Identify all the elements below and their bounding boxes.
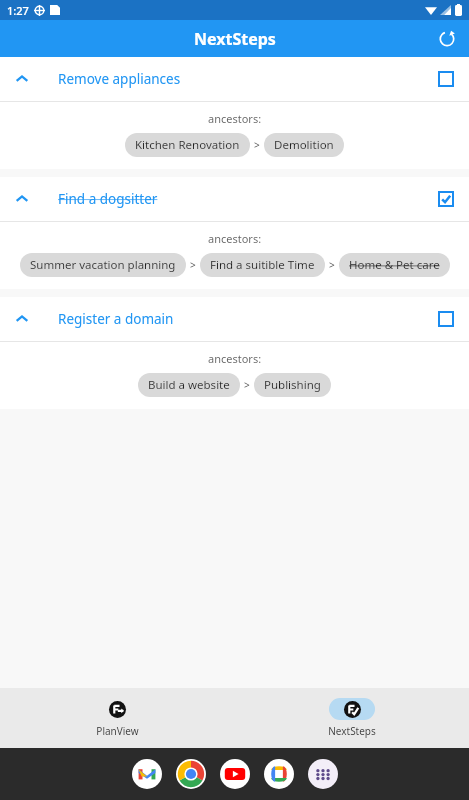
button[interactable]: Checked xyxy=(423,177,469,221)
button[interactable]: NextSteps xyxy=(234,688,469,748)
staticText: ancestors: xyxy=(208,351,262,366)
staticText: NextSteps xyxy=(328,724,376,738)
staticText: > xyxy=(329,258,335,272)
button[interactable]: Summer vacation planning xyxy=(20,253,186,277)
button[interactable]: Publishing xyxy=(254,373,331,397)
button[interactable]: App xyxy=(308,759,338,789)
button[interactable]: App xyxy=(132,759,162,789)
button[interactable]: Collapse xyxy=(0,297,469,341)
button[interactable]: Find a suitible Time xyxy=(200,253,325,277)
button[interactable]: Build a website xyxy=(138,373,240,397)
button[interactable]: PlanView xyxy=(0,688,234,748)
staticText: > xyxy=(244,378,250,392)
staticText: Home & Pet care xyxy=(349,257,440,273)
staticText: Demolition xyxy=(274,137,334,153)
staticText: Remove appliances xyxy=(58,70,423,88)
staticText: Summer vacation planning xyxy=(30,257,176,273)
button[interactable]: Collapse xyxy=(0,177,469,221)
button[interactable]: Refresh xyxy=(431,23,463,55)
button[interactable]: App xyxy=(176,759,206,789)
staticText: > xyxy=(190,258,196,272)
staticText: NextSteps xyxy=(194,28,276,50)
button[interactable]: Collapse xyxy=(0,177,44,221)
button[interactable]: Unchecked xyxy=(423,57,469,101)
staticText: 1:27 xyxy=(7,3,29,18)
button[interactable]: Home & Pet care xyxy=(339,253,450,277)
staticText: Find a suitible Time xyxy=(210,257,315,273)
staticText: Kitchen Renovation xyxy=(135,137,240,153)
staticText: PlanView xyxy=(96,724,139,738)
button[interactable]: App xyxy=(264,759,294,789)
staticText: Publishing xyxy=(264,377,321,393)
button[interactable]: Kitchen Renovation xyxy=(125,133,250,157)
button[interactable]: Unchecked xyxy=(423,297,469,341)
button[interactable]: App xyxy=(220,759,250,789)
staticText: Build a website xyxy=(148,377,230,393)
staticText: ancestors: xyxy=(208,111,262,126)
staticText: Register a domain xyxy=(58,310,423,328)
button[interactable]: Collapse xyxy=(0,297,44,341)
button[interactable]: Collapse xyxy=(0,57,44,101)
staticText: ancestors: xyxy=(208,231,262,246)
button[interactable]: Demolition xyxy=(264,133,344,157)
staticText: Find a dogsitter xyxy=(58,190,423,208)
button[interactable]: Collapse xyxy=(0,57,469,101)
staticText: > xyxy=(254,138,260,152)
